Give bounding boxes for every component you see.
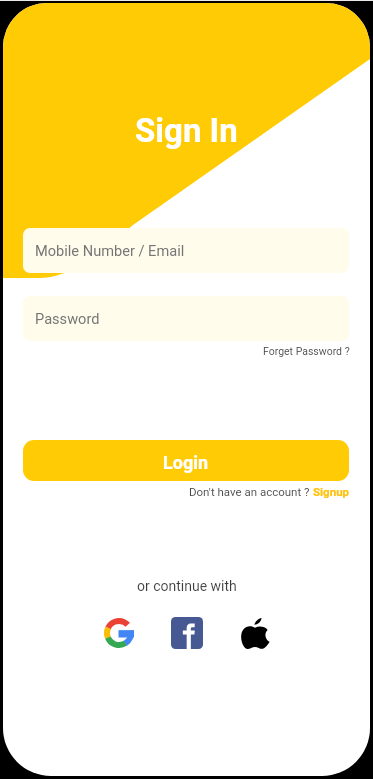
button[interactable]: Sign in with Apple [233, 611, 277, 655]
staticText: Don't have an account ? [189, 485, 313, 498]
staticText: Password [35, 310, 100, 327]
button[interactable]: Sign in with Facebook [165, 611, 209, 655]
button[interactable]: Sign in with Google [97, 611, 141, 655]
button[interactable]: Password [23, 296, 349, 341]
staticText: Sign In [135, 111, 238, 150]
button[interactable]: Mobile Number / Email [23, 228, 349, 273]
staticText: Login [163, 452, 209, 473]
button[interactable]: Signup [313, 485, 350, 498]
button[interactable]: Forget Password ? [263, 344, 370, 358]
staticText: or continue with [137, 578, 237, 594]
staticText: Mobile Number / Email [35, 242, 185, 259]
button[interactable]: Login [23, 440, 349, 481]
